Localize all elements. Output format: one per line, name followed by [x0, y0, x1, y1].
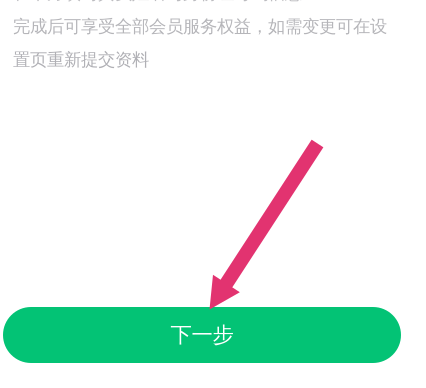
button[interactable]: 下一步	[3, 307, 401, 363]
staticText: 完成后可享受全部会员服务权益，如需变更可在设	[13, 16, 387, 37]
staticText: 下一步	[170, 322, 233, 348]
staticText: 在下方填写真实姓名与身份证号码信息	[13, 0, 302, 4]
staticText: 置页重新提交资料	[13, 49, 149, 70]
